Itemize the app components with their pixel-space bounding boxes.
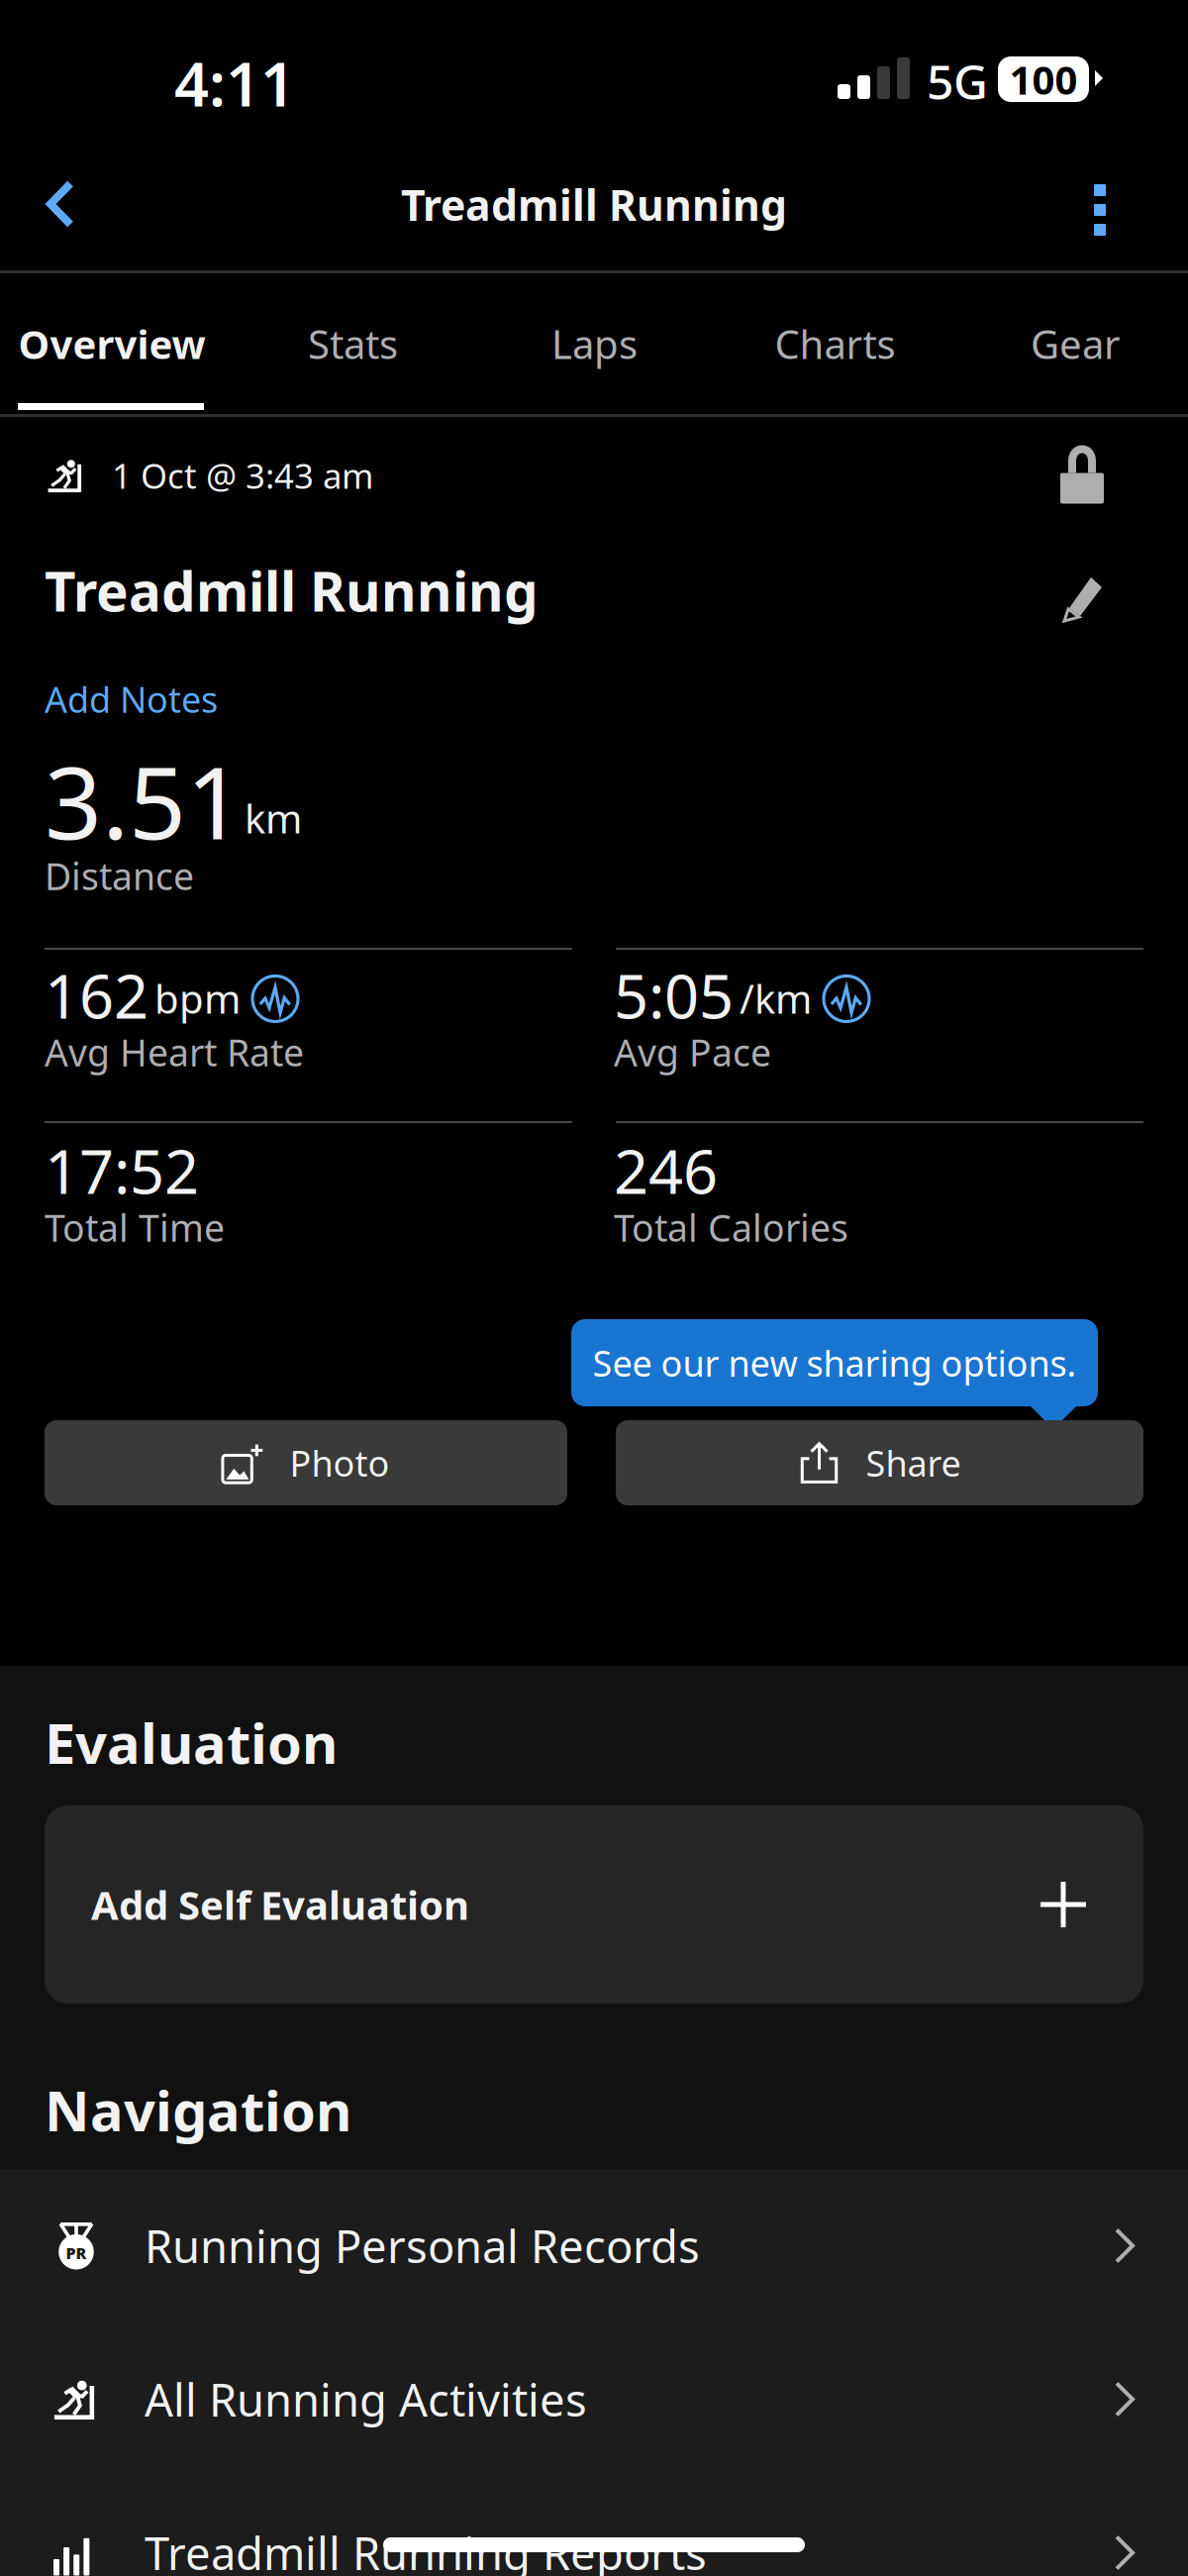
staticText: Navigation [45,2073,351,2147]
staticText: 246 [614,1130,718,1211]
staticText: All Running Activities [145,2369,587,2429]
button[interactable]: Photo [45,1420,567,1505]
button[interactable]: Stats [224,273,482,414]
button[interactable]: Treadmill Running Reports [0,2476,1188,2576]
staticText: bpm [154,972,241,1024]
staticText: Total Time [45,1203,225,1252]
staticText: 5:05 [614,955,734,1035]
staticText: Treadmill Running [401,176,787,233]
staticText: /km [740,972,812,1024]
staticText: Treadmill Running Reports [145,2523,707,2576]
button[interactable]: PR [0,2169,1188,2322]
staticText: 4:11 [174,43,295,123]
staticText: Avg Heart Rate [45,1027,304,1077]
staticText: See our new sharing options. [593,1339,1077,1386]
staticText: km [245,792,302,844]
staticText: 162 [45,955,148,1035]
button[interactable]: Gear [963,273,1188,414]
staticText: PR [66,2242,87,2263]
staticText: Stats [308,317,398,370]
staticText: 5G [927,50,988,113]
staticText: Add Notes [45,675,218,723]
button[interactable]: Share [616,1420,1143,1505]
staticText: Overview [18,317,205,370]
staticText: Charts [775,317,895,370]
staticText: Add Self Evaluation [91,1878,469,1931]
staticText: Avg Pace [614,1027,771,1077]
staticText: 17:52 [45,1130,199,1211]
staticText: Running Personal Records [145,2216,700,2276]
button[interactable]: All Running Activities [0,2322,1188,2476]
button[interactable]: More options [1052,160,1147,259]
button[interactable]: Edit name [1051,568,1115,630]
staticText: Gear [1031,317,1121,370]
staticText: Total Calories [614,1203,848,1252]
button[interactable]: Add Self Evaluation [45,1805,1143,2004]
staticText: Evaluation [45,1705,338,1779]
button[interactable]: Laps [482,273,707,414]
staticText: Share [866,1439,961,1486]
staticText: Laps [551,317,638,370]
staticText: Distance [45,851,194,900]
staticText: Photo [290,1439,390,1486]
staticText: Treadmill Running [45,555,539,627]
staticText: 1 Oct @ 3:43 am [112,453,373,498]
button[interactable]: Charts [707,273,963,414]
button[interactable]: Add Notes [0,668,242,731]
staticText: 3.51 [45,734,244,867]
button[interactable]: Overview [0,273,224,414]
button[interactable]: Privacy [1045,441,1119,510]
button[interactable]: Back [8,155,113,254]
staticText: 100 [1009,53,1078,105]
